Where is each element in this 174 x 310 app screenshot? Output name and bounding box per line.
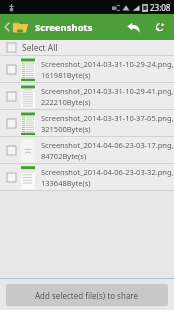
button[interactable]: Back <box>120 14 146 40</box>
staticText: 222210Byte(s) <box>41 97 91 107</box>
staticText: 84702Byte(s) <box>41 151 87 161</box>
staticText: Screenshot_2014-04-06-23-03-32.png, <box>41 167 174 177</box>
button[interactable]: Screenshot_2014-04-06-23-03-17.png, <box>0 137 174 163</box>
staticText: 321500Byte(s) <box>41 124 91 134</box>
button[interactable]: Screenshot_2014-04-06-23-03-32.png, <box>0 164 174 190</box>
button[interactable]: Screenshot_2014-03-31-10-37-05.png, <box>0 110 174 136</box>
staticText: 23:08 <box>150 2 171 13</box>
staticText: Screenshot_2014-03-31-10-29-24.png, <box>41 59 174 69</box>
button[interactable]: Add selected file(s) to share <box>6 284 168 306</box>
button[interactable]: Refresh <box>146 14 174 40</box>
staticText: 161981Byte(s) <box>41 70 91 80</box>
button[interactable]: Screenshot_2014-03-31-10-29-24.png, <box>0 56 174 82</box>
staticText: 133648Byte(s) <box>41 178 91 188</box>
button[interactable]: Screenshot_2014-03-31-10-29-41.png, <box>0 83 174 109</box>
staticText: Screenshot_2014-03-31-10-29-41.png, <box>41 86 174 96</box>
staticText: Add selected file(s) to share <box>35 290 139 301</box>
button[interactable]: Up <box>2 14 12 40</box>
staticText: Screenshot_2014-03-31-10-37-05.png, <box>41 113 174 123</box>
button[interactable]: Select All <box>0 40 174 55</box>
staticText: Screenshots <box>35 21 93 34</box>
staticText: Screenshot_2014-04-06-23-03-17.png, <box>41 140 174 150</box>
staticText: Select All <box>22 42 58 54</box>
